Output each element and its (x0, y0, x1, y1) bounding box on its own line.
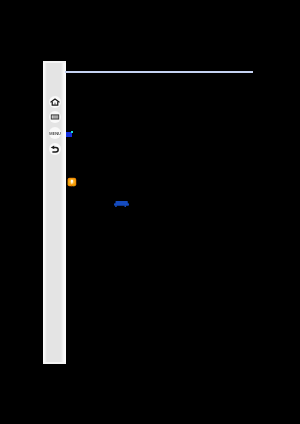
button[interactable]: Home (49, 96, 61, 108)
button[interactable]: Selection marker (66, 132, 72, 137)
button[interactable]: Display (49, 111, 61, 123)
button[interactable]: Back (49, 143, 61, 155)
button[interactable]: Lights (67, 177, 77, 187)
staticText: MENU (49, 131, 61, 136)
button[interactable]: Menu (49, 127, 61, 139)
button[interactable]: Living room (114, 201, 129, 207)
